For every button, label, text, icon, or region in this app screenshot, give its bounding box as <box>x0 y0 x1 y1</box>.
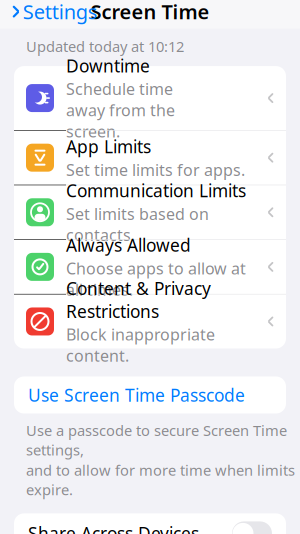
staticText: Screen Time <box>90 0 209 25</box>
staticText: and to allow for more time when limits e… <box>26 460 295 499</box>
staticText: Choose apps to allow at all times. <box>66 258 246 300</box>
staticText: Set limits based on contacts. <box>66 203 209 245</box>
staticText: Always Allowed <box>66 234 191 257</box>
staticText: Set time limits for apps. <box>66 159 245 180</box>
button[interactable]: Settings <box>4 0 106 31</box>
staticText: Settings <box>23 0 98 25</box>
staticText: Content & Privacy Restrictions <box>66 277 211 323</box>
staticText: Communication Limits <box>66 179 246 202</box>
staticText: Use a passcode to secure Screen Time set… <box>26 420 287 459</box>
staticText: Block inappropriate content. <box>66 324 215 366</box>
button[interactable]: Share Across Devices <box>232 521 272 534</box>
button[interactable]: Downtime <box>14 66 286 131</box>
staticText: Share Across Devices <box>28 522 199 534</box>
button[interactable]: Communication Limits <box>14 185 286 240</box>
button[interactable]: Always Allowed <box>14 240 286 294</box>
staticText: Downtime <box>66 54 150 77</box>
staticText: App Limits <box>66 135 151 158</box>
button[interactable]: Content & Privacy Restrictions <box>14 294 286 348</box>
button[interactable]: App Limits <box>14 131 286 185</box>
staticText: Updated today at 10:12 <box>26 37 184 56</box>
button[interactable]: Use Screen Time Passcode <box>14 376 286 413</box>
staticText: Use Screen Time Passcode <box>28 383 245 406</box>
staticText: Schedule time away from the screen. <box>66 78 175 142</box>
